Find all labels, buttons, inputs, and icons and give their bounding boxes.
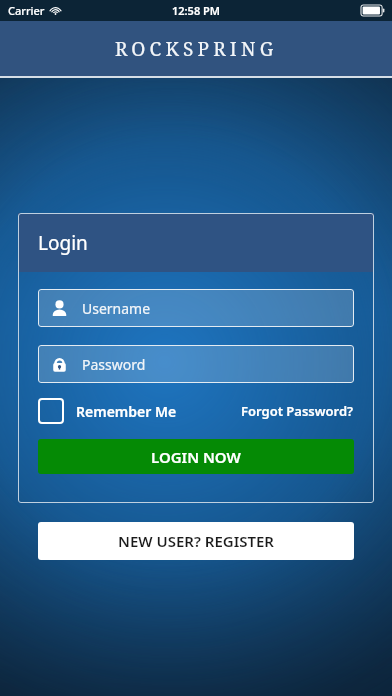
button[interactable]: Remember Me (38, 398, 177, 424)
button[interactable]: Forgot Password? (241, 402, 354, 420)
staticText: ROCKSPRING (115, 36, 278, 62)
button[interactable]: Password (38, 345, 354, 383)
staticText: Carrier (8, 3, 45, 18)
staticText: Remember Me (76, 402, 177, 421)
staticText: Login (38, 230, 88, 256)
staticText: LOGIN NOW (151, 447, 241, 467)
staticText: Forgot Password? (241, 402, 354, 420)
staticText: NEW USER? REGISTER (118, 531, 275, 551)
staticText: 12:58 PM (172, 3, 221, 18)
button[interactable]: Username (38, 289, 354, 327)
button[interactable]: NEW USER? REGISTER (38, 522, 354, 560)
staticText: Username (82, 299, 151, 318)
staticText: Password (82, 355, 146, 374)
button[interactable]: LOGIN NOW (38, 439, 354, 474)
